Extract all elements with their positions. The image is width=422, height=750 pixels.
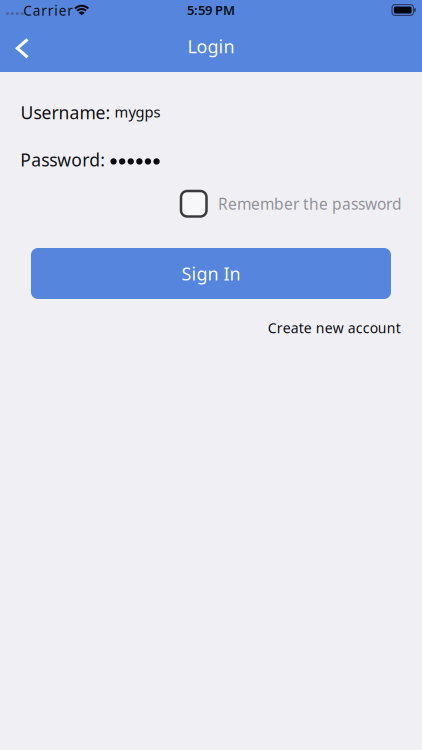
button[interactable]: Remember the password bbox=[181, 191, 402, 216]
staticText: Remember the password bbox=[218, 193, 402, 214]
button[interactable]: Create new account bbox=[268, 318, 401, 337]
staticText: 5:59 PM bbox=[187, 1, 235, 19]
staticText: Username: bbox=[20, 100, 110, 124]
staticText: Sign In bbox=[181, 261, 240, 286]
staticText: mygps bbox=[114, 102, 160, 122]
staticText: Create new account bbox=[268, 318, 401, 337]
button[interactable]: Sign In bbox=[31, 248, 391, 299]
staticText: Login bbox=[187, 34, 234, 59]
button[interactable]: Back bbox=[0, 27, 43, 69]
staticText: Carrier bbox=[23, 1, 73, 20]
staticText: Password: bbox=[20, 148, 105, 172]
